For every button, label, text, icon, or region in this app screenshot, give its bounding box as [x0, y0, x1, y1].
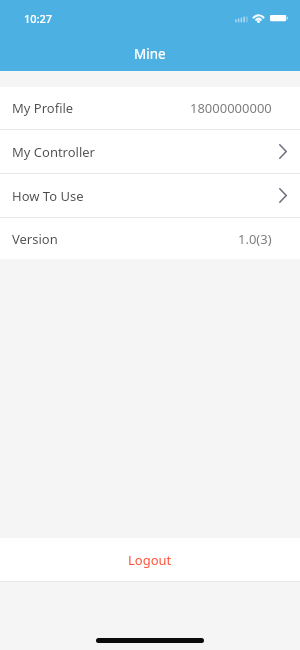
staticText: Mine — [134, 45, 166, 63]
button[interactable]: How To Use — [0, 174, 300, 218]
staticText: 18000000000 — [190, 99, 272, 117]
button[interactable]: My Controller — [0, 130, 300, 174]
button[interactable]: Logout — [0, 538, 300, 581]
button[interactable]: Version — [0, 218, 300, 259]
staticText: My Controller — [12, 143, 95, 161]
staticText: How To Use — [12, 187, 84, 205]
other: How To Use — [279, 188, 287, 203]
button[interactable]: My Profile — [0, 87, 300, 130]
staticText: Logout — [128, 551, 172, 569]
staticText: 10:27 — [24, 11, 53, 26]
staticText: Version — [12, 230, 58, 248]
staticText: 1.0(3) — [238, 230, 272, 248]
other: My Controller — [279, 144, 287, 159]
staticText: My Profile — [12, 99, 74, 117]
